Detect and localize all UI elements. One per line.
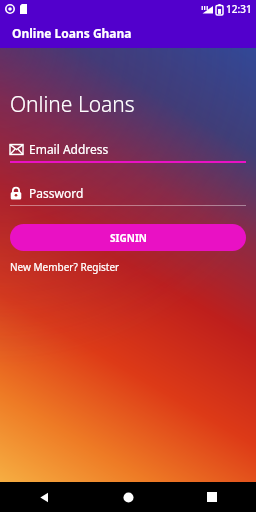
- staticText: Online Loans: [10, 90, 135, 119]
- button[interactable]: New Member? Register: [10, 260, 120, 274]
- staticText: SIGNIN: [110, 231, 147, 245]
- staticText: Email Address: [29, 141, 109, 157]
- button[interactable]: Password: [10, 185, 246, 206]
- staticText: New Member? Register: [10, 260, 120, 274]
- staticText: Password: [29, 185, 84, 201]
- button[interactable]: SIGNIN: [10, 224, 246, 251]
- button[interactable]: Home: [114, 483, 142, 511]
- button[interactable]: Recent apps: [198, 483, 226, 511]
- button[interactable]: Back: [30, 483, 58, 511]
- button[interactable]: Email Address: [10, 141, 246, 163]
- staticText: 12:31: [226, 2, 252, 16]
- staticText: Online Loans Ghana: [12, 25, 132, 41]
